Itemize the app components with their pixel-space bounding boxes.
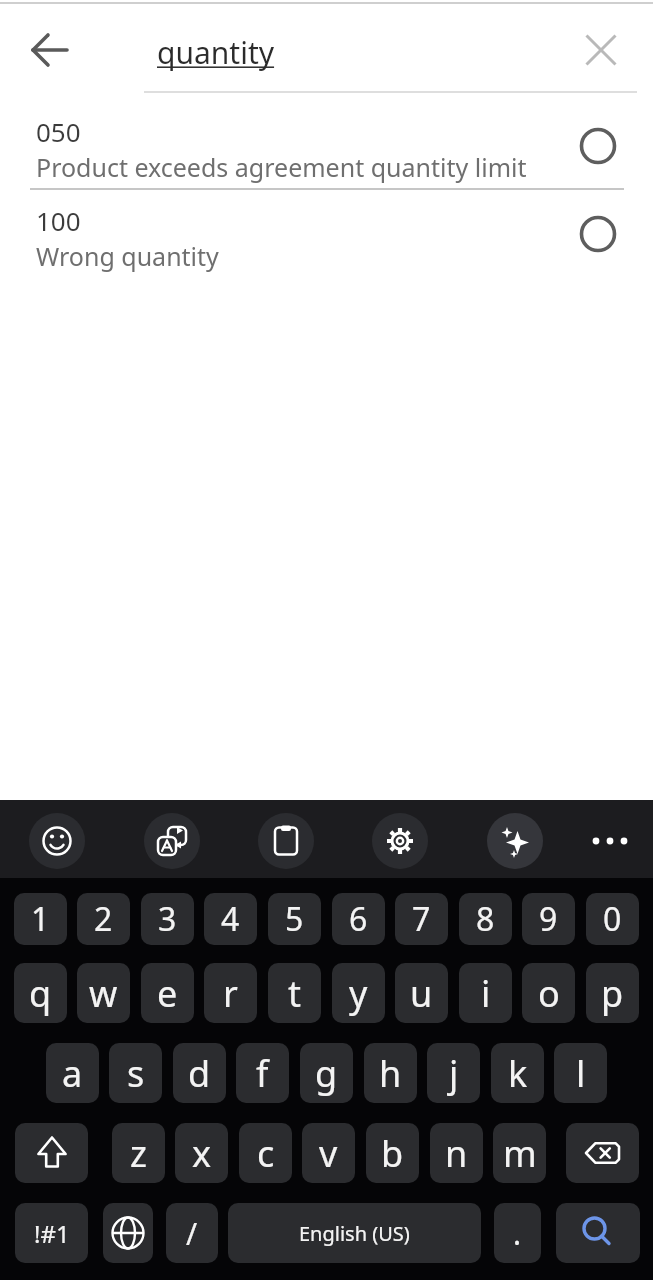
button[interactable]	[487, 813, 543, 869]
staticText: 5	[285, 897, 304, 941]
staticText: n	[445, 1129, 468, 1178]
staticText: 3	[158, 897, 177, 941]
staticText: y	[349, 969, 368, 1018]
staticText: c	[257, 1129, 275, 1178]
button[interactable]: t	[268, 963, 321, 1023]
button[interactable]: r	[204, 963, 257, 1023]
button[interactable]: b	[366, 1123, 419, 1183]
button[interactable]: .	[494, 1203, 541, 1263]
button[interactable]: g	[300, 1043, 353, 1103]
staticText: Product exceeds agreement quantity limit	[36, 150, 527, 184]
button[interactable]: u	[395, 963, 448, 1023]
button[interactable]: p	[586, 963, 639, 1023]
staticText: /	[186, 1213, 198, 1254]
staticText: a	[62, 1049, 83, 1098]
button[interactable]	[258, 813, 314, 869]
button[interactable]: 9	[522, 893, 575, 945]
button[interactable]	[566, 15, 636, 85]
staticText: 9	[539, 897, 558, 941]
staticText: v	[319, 1129, 338, 1178]
button[interactable]: /	[166, 1203, 218, 1263]
button[interactable]: 1	[14, 893, 67, 945]
staticText: e	[157, 969, 178, 1018]
button[interactable]: !#1	[15, 1203, 88, 1263]
button[interactable]: x	[175, 1123, 228, 1183]
button[interactable]: z	[112, 1123, 165, 1183]
staticText: 7	[412, 897, 431, 941]
button[interactable]	[15, 1123, 88, 1183]
staticText: .	[513, 1213, 522, 1254]
button[interactable]: d	[173, 1043, 226, 1103]
button[interactable]: l	[554, 1043, 607, 1103]
button[interactable]: o	[522, 963, 575, 1023]
staticText: s	[127, 1049, 145, 1098]
staticText: 100	[36, 203, 81, 238]
button[interactable]: i	[459, 963, 512, 1023]
staticText: i	[481, 969, 491, 1018]
button[interactable]: j	[427, 1043, 480, 1103]
staticText: z	[130, 1129, 147, 1178]
staticText: l	[576, 1049, 586, 1098]
staticText: English (US)	[299, 1220, 410, 1247]
button[interactable]: 7	[395, 893, 448, 945]
button[interactable]	[103, 1203, 153, 1263]
staticText: x	[192, 1129, 212, 1178]
button[interactable]	[372, 813, 428, 869]
staticText: 1	[31, 897, 50, 941]
button[interactable]: y	[332, 963, 385, 1023]
button[interactable]: e	[141, 963, 194, 1023]
staticText: 8	[476, 897, 495, 941]
button[interactable]: English (US)	[228, 1203, 481, 1263]
staticText: 050	[36, 114, 81, 149]
button[interactable]: f	[236, 1043, 289, 1103]
button[interactable]	[582, 813, 638, 869]
button[interactable]	[0, 190, 653, 278]
button[interactable]: 2	[77, 893, 130, 945]
staticText: 6	[349, 897, 368, 941]
button[interactable]: 0	[586, 893, 639, 945]
button[interactable]	[0, 97, 653, 188]
button[interactable]: 4	[204, 893, 257, 945]
button[interactable]: m	[493, 1123, 546, 1183]
button[interactable]: q	[14, 963, 67, 1023]
staticText: j	[449, 1049, 459, 1098]
staticText: w	[89, 969, 118, 1018]
staticText: f	[256, 1049, 269, 1098]
button[interactable]: a	[46, 1043, 99, 1103]
staticText: 0	[603, 897, 622, 941]
button[interactable]: k	[491, 1043, 544, 1103]
staticText: !#1	[34, 1217, 70, 1250]
staticText: 4	[221, 897, 240, 941]
button[interactable]: 6	[332, 893, 385, 945]
button[interactable]	[566, 1123, 639, 1183]
button[interactable]: s	[109, 1043, 162, 1103]
button[interactable]	[14, 14, 86, 86]
staticText: d	[188, 1049, 211, 1098]
button[interactable]	[144, 813, 200, 869]
button[interactable]: 5	[268, 893, 321, 945]
staticText: Wrong quantity	[36, 239, 219, 273]
button[interactable]: 3	[141, 893, 194, 945]
staticText: t	[288, 969, 301, 1018]
staticText: quantity	[157, 32, 275, 73]
button[interactable]: 8	[459, 893, 512, 945]
button[interactable]: c	[239, 1123, 292, 1183]
staticText: b	[381, 1129, 404, 1178]
button[interactable]: n	[430, 1123, 483, 1183]
staticText: k	[508, 1049, 528, 1098]
staticText: u	[410, 969, 433, 1018]
staticText: h	[379, 1049, 402, 1098]
button[interactable]	[29, 813, 85, 869]
button[interactable]	[556, 1203, 640, 1263]
staticText: q	[29, 969, 52, 1018]
staticText: o	[538, 969, 560, 1018]
staticText: r	[223, 969, 238, 1018]
button[interactable]: w	[77, 963, 130, 1023]
button[interactable]: h	[364, 1043, 417, 1103]
staticText: m	[503, 1129, 537, 1178]
staticText: 2	[94, 897, 113, 941]
staticText: p	[601, 969, 624, 1018]
button[interactable]: v	[302, 1123, 355, 1183]
staticText: g	[315, 1049, 338, 1098]
